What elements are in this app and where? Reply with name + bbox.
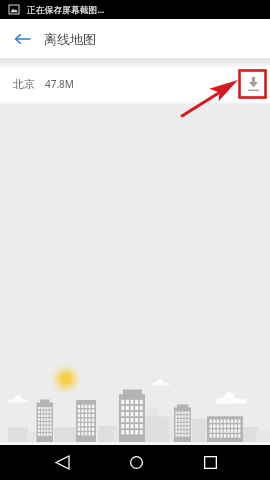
staticText: 47.8M	[45, 77, 74, 91]
button[interactable]: Home	[99, 445, 173, 480]
button[interactable]: Recent apps	[173, 445, 247, 480]
staticText: 北京	[13, 77, 35, 91]
button[interactable]: Back	[25, 445, 99, 480]
button[interactable]: 北京	[0, 67, 270, 101]
button[interactable]: Download	[239, 67, 267, 101]
button[interactable]: Back	[0, 19, 44, 58]
staticText: 离线地图	[44, 31, 96, 47]
staticText: 正在保存屏幕截图...	[27, 4, 105, 16]
